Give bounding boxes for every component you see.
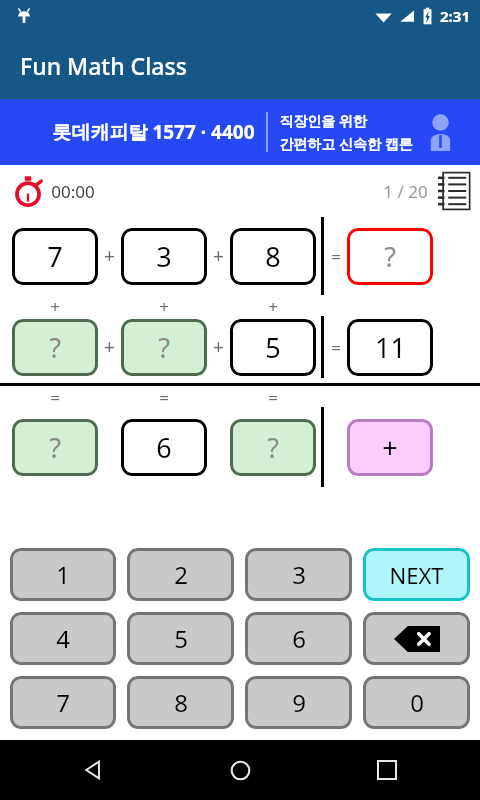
button[interactable]: ? — [230, 419, 316, 476]
staticText: + — [213, 334, 224, 360]
button[interactable]: ? — [12, 419, 98, 476]
button[interactable]: 11 — [347, 319, 433, 376]
staticText: 8 — [174, 686, 188, 719]
other: Timer — [12, 175, 44, 207]
staticText: 3 — [292, 558, 306, 591]
staticText: 6 — [292, 622, 306, 655]
staticText: NEXT — [389, 560, 444, 590]
button[interactable]: 2 — [127, 548, 234, 601]
staticText: ? — [267, 429, 279, 466]
staticText: 롯데캐피탈 1577 · 4400 — [52, 119, 255, 145]
button[interactable]: 5 — [127, 612, 234, 665]
staticText: + — [104, 243, 115, 269]
staticText: 00:00 — [51, 180, 95, 203]
staticText: ? — [158, 329, 170, 366]
staticText: ? — [49, 329, 61, 366]
staticText: 11 — [375, 329, 406, 366]
staticText: 5 — [174, 622, 188, 655]
button[interactable]: 9 — [245, 676, 352, 729]
staticText: = — [331, 245, 341, 268]
button[interactable]: + — [347, 419, 433, 476]
button[interactable]: ? — [121, 319, 207, 376]
button[interactable]: 7 — [10, 676, 116, 729]
button[interactable]: 1 — [10, 548, 116, 601]
button[interactable]: Notes — [437, 171, 471, 211]
button[interactable]: 3 — [121, 228, 207, 285]
staticText: 1 — [56, 558, 70, 591]
staticText: 2:31 — [440, 6, 470, 26]
button[interactable]: Backspace — [363, 612, 470, 665]
button[interactable]: 6 — [245, 612, 352, 665]
staticText: 1 / 20 — [383, 180, 428, 203]
button[interactable]: 4 — [10, 612, 116, 665]
staticText: ? — [49, 429, 61, 466]
staticText: + — [382, 429, 398, 466]
button[interactable]: ? — [12, 319, 98, 376]
staticText: Fun Math Class — [20, 50, 187, 81]
staticText: + — [268, 295, 278, 316]
staticText: 0 — [410, 686, 424, 719]
staticText: = — [50, 386, 60, 407]
button[interactable]: 6 — [121, 419, 207, 476]
staticText: + — [213, 243, 224, 269]
button[interactable]: Home — [219, 749, 261, 791]
staticText: 8 — [265, 238, 281, 275]
staticText: = — [159, 386, 169, 407]
staticText: ? — [384, 238, 396, 275]
staticText: 직장인을 위한 — [279, 111, 367, 130]
button[interactable]: 롯데캐피탈 1577 · 4400 — [0, 99, 480, 165]
staticText: 간편하고 신속한 캡론 — [279, 134, 413, 153]
staticText: = — [331, 336, 341, 359]
button[interactable]: 8 — [230, 228, 316, 285]
staticText: 5 — [265, 329, 281, 366]
button[interactable]: Recent apps — [366, 749, 408, 791]
staticText: 3 — [156, 238, 172, 275]
staticText: 9 — [292, 686, 306, 719]
button[interactable]: 8 — [127, 676, 234, 729]
button[interactable]: 0 — [363, 676, 470, 729]
staticText: 2 — [174, 558, 188, 591]
staticText: 7 — [47, 238, 63, 275]
staticText: 7 — [56, 686, 70, 719]
button[interactable]: Back — [72, 749, 114, 791]
button[interactable]: NEXT — [363, 548, 470, 601]
staticText: = — [268, 386, 278, 407]
button[interactable]: 7 — [12, 228, 98, 285]
button[interactable]: ? — [347, 228, 433, 285]
staticText: + — [50, 295, 60, 316]
button[interactable]: 5 — [230, 319, 316, 376]
button[interactable]: 3 — [245, 548, 352, 601]
staticText: + — [159, 295, 169, 316]
staticText: 6 — [156, 429, 172, 466]
staticText: + — [104, 334, 115, 360]
staticText: 4 — [56, 622, 70, 655]
